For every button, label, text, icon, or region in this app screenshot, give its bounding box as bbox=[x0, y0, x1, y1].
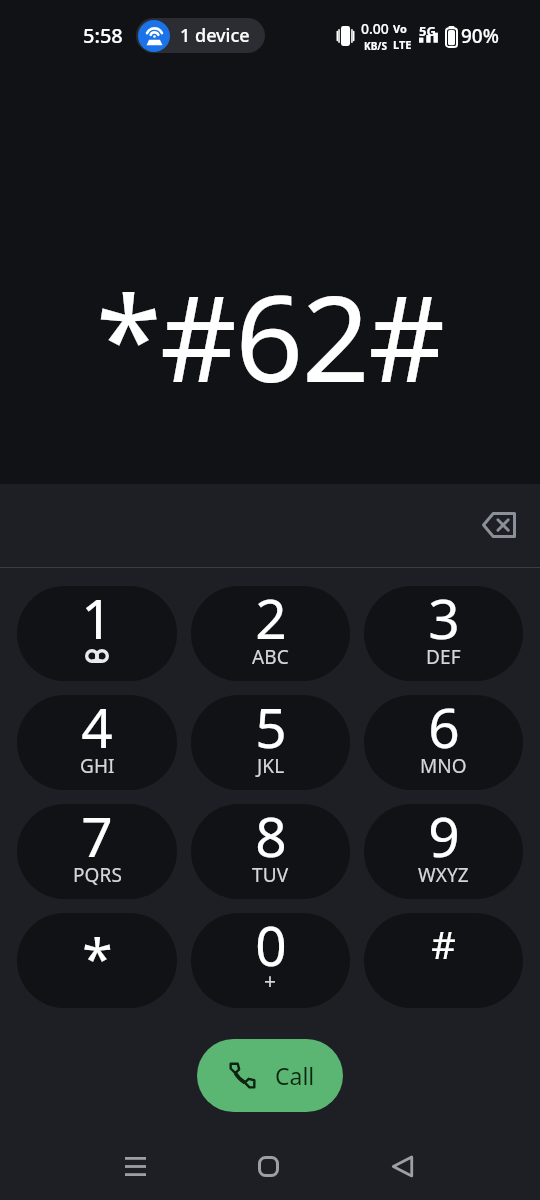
staticText: 1 device bbox=[180, 23, 250, 48]
staticText: 90% bbox=[461, 23, 499, 49]
staticText: MNO bbox=[420, 753, 467, 779]
button[interactable]: 8 bbox=[191, 804, 350, 899]
button[interactable]: 0 bbox=[191, 913, 350, 1008]
staticText: 5G bbox=[419, 22, 436, 40]
button[interactable]: Home bbox=[244, 1142, 292, 1190]
button[interactable]: 1 bbox=[17, 586, 177, 681]
staticText: 6 bbox=[428, 695, 460, 764]
staticText: PQRS bbox=[73, 862, 122, 888]
staticText: 0.00 bbox=[361, 19, 389, 38]
staticText: 5 bbox=[255, 695, 287, 764]
staticText: 0 bbox=[255, 913, 287, 982]
button[interactable]: 2 bbox=[191, 586, 350, 681]
staticText: + bbox=[264, 967, 277, 996]
staticText: JKL bbox=[257, 753, 285, 779]
staticText: 4 bbox=[81, 695, 113, 764]
button[interactable]: 4 bbox=[17, 695, 177, 790]
staticText: 8 bbox=[255, 804, 287, 873]
staticText: ABC bbox=[252, 644, 289, 670]
button[interactable]: Backspace bbox=[469, 495, 529, 555]
button[interactable]: 3 bbox=[364, 586, 523, 681]
staticText: 7 bbox=[81, 804, 113, 873]
staticText: GHI bbox=[80, 753, 115, 779]
button[interactable]: 5 bbox=[191, 695, 350, 790]
staticText: 9 bbox=[428, 804, 460, 873]
button[interactable]: Recent apps bbox=[111, 1142, 159, 1190]
staticText: Call bbox=[275, 1060, 315, 1091]
staticText: 3 bbox=[428, 586, 460, 655]
button[interactable]: * bbox=[17, 913, 177, 1008]
staticText: WXYZ bbox=[418, 862, 469, 888]
staticText: Vo bbox=[393, 21, 407, 36]
staticText: * bbox=[82, 920, 113, 995]
staticText: 2 bbox=[255, 586, 287, 655]
staticText: LTE bbox=[393, 37, 412, 52]
button[interactable]: Call bbox=[197, 1039, 343, 1112]
button[interactable]: Back bbox=[378, 1142, 426, 1190]
staticText: 1 bbox=[81, 586, 113, 655]
staticText: *#62# bbox=[96, 255, 444, 417]
button[interactable]: # bbox=[364, 913, 523, 1008]
staticText: TUV bbox=[252, 862, 289, 888]
staticText: KB/S bbox=[364, 39, 387, 53]
staticText: # bbox=[431, 918, 456, 970]
button[interactable]: 6 bbox=[364, 695, 523, 790]
button[interactable]: 9 bbox=[364, 804, 523, 899]
staticText: DEF bbox=[426, 644, 461, 670]
button[interactable]: 7 bbox=[17, 804, 177, 899]
staticText: 5:58 bbox=[83, 22, 123, 49]
